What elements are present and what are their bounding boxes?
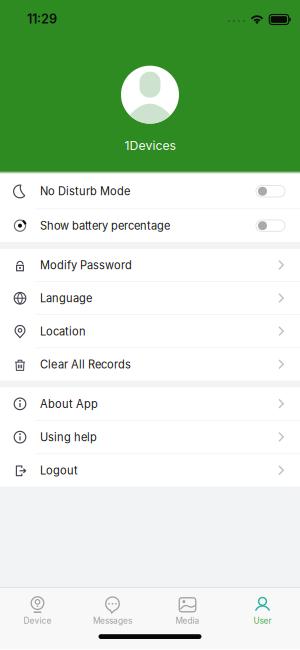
staticText: Media [175, 616, 199, 626]
staticText: Clear All Records [40, 358, 131, 371]
button[interactable]: User [225, 589, 300, 633]
button[interactable]: Device [0, 589, 75, 633]
button[interactable]: Logout [0, 454, 300, 487]
staticText: Modify Password [40, 258, 132, 272]
staticText: No Disturb Mode [40, 185, 130, 198]
staticText: About App [40, 397, 98, 411]
button[interactable]: Clear All Records [0, 348, 300, 381]
staticText: Logout [40, 464, 78, 477]
button[interactable]: Show battery percentage [0, 209, 300, 242]
button[interactable]: Messages [75, 589, 150, 633]
button[interactable]: Modify Password [0, 249, 300, 281]
staticText: Messages [93, 616, 132, 626]
button[interactable]: Using help [0, 421, 300, 453]
staticText: Show battery percentage [40, 219, 170, 232]
staticText: User [253, 616, 271, 626]
button[interactable]: Media [150, 589, 225, 633]
staticText: Device [23, 616, 51, 626]
staticText: Location [40, 325, 86, 338]
button[interactable]: No Disturb Mode [0, 174, 300, 208]
staticText: Using help [40, 430, 97, 444]
staticText: Language [40, 292, 92, 305]
button[interactable]: Language [0, 282, 300, 314]
staticText: 11:29 [27, 11, 57, 27]
button[interactable]: About App [0, 388, 300, 420]
staticText: 1Devices [124, 138, 175, 153]
button[interactable]: Location [0, 315, 300, 347]
